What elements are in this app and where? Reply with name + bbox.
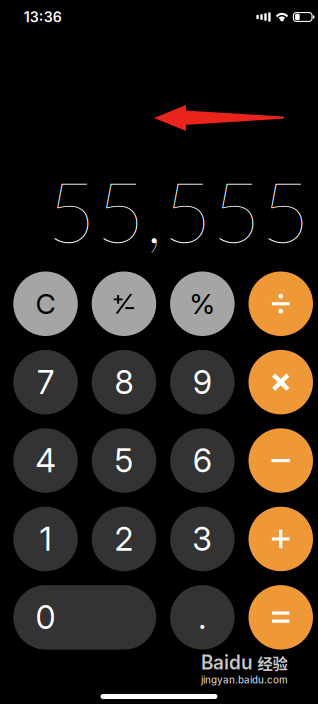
staticText: 0	[35, 598, 55, 637]
button[interactable]: Equals	[248, 585, 313, 650]
button[interactable]: 0	[13, 585, 156, 650]
staticText: 3	[192, 519, 212, 558]
staticText: 4	[35, 441, 55, 480]
button[interactable]: C	[13, 271, 78, 336]
button[interactable]: %	[170, 271, 235, 336]
button[interactable]: Multiply	[248, 350, 313, 414]
staticText: C	[35, 287, 55, 321]
button[interactable]: 4	[13, 428, 78, 493]
staticText: Baidu	[201, 651, 253, 674]
staticText: 2	[114, 519, 133, 558]
button[interactable]: 8	[92, 350, 156, 414]
button[interactable]: 2	[92, 507, 156, 571]
staticText: .	[198, 598, 206, 637]
button[interactable]: 1	[13, 507, 78, 571]
button[interactable]: Plus	[248, 507, 313, 571]
staticText: 1	[39, 519, 51, 558]
staticText: 经验	[257, 651, 287, 674]
button[interactable]: Divide	[248, 271, 313, 336]
staticText: 55,555	[47, 159, 310, 261]
button[interactable]: .	[170, 585, 235, 650]
staticText: %	[189, 287, 215, 321]
staticText: 6	[193, 441, 212, 480]
button[interactable]: 5	[92, 428, 156, 493]
staticText: 5	[114, 441, 133, 480]
button[interactable]: 9	[170, 350, 235, 414]
button[interactable]: 7	[13, 350, 78, 414]
staticText: 13:36	[24, 8, 62, 25]
staticText: jingyan.baidu.com	[201, 674, 288, 686]
staticText: 9	[193, 363, 212, 402]
button[interactable]: 6	[170, 428, 235, 493]
button[interactable]: 3	[170, 507, 235, 571]
button[interactable]: Minus	[248, 428, 313, 493]
button[interactable]: Plus minus	[92, 271, 156, 336]
staticText: 8	[114, 363, 133, 402]
staticText: 7	[37, 363, 54, 402]
